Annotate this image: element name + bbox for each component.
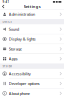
button[interactable]: Display & lights (0, 34, 64, 44)
staticText: Storage (9, 46, 22, 51)
button[interactable]: Developer options (0, 79, 64, 88)
button[interactable]: About phone (0, 89, 64, 98)
staticText: Developer options (9, 81, 40, 86)
button[interactable]: Administration (0, 9, 64, 19)
button[interactable]: Back (1, 4, 6, 9)
staticText: Accessibility (9, 71, 31, 76)
staticText: About phone (9, 91, 30, 96)
staticText: Administration (9, 12, 35, 17)
staticText: 9:41 (3, 0, 10, 4)
staticText: Display & lights (9, 36, 36, 42)
button[interactable]: Apps (0, 54, 64, 63)
button[interactable]: Storage (0, 44, 64, 54)
button[interactable]: Sound (0, 24, 64, 34)
button[interactable]: Accessibility (0, 69, 64, 78)
staticText: DEVICE (2, 20, 11, 23)
staticText: Settings (24, 4, 41, 9)
staticText: Sound (9, 26, 19, 32)
staticText: Apps (9, 56, 18, 61)
staticText: SYSTEM (2, 64, 11, 68)
